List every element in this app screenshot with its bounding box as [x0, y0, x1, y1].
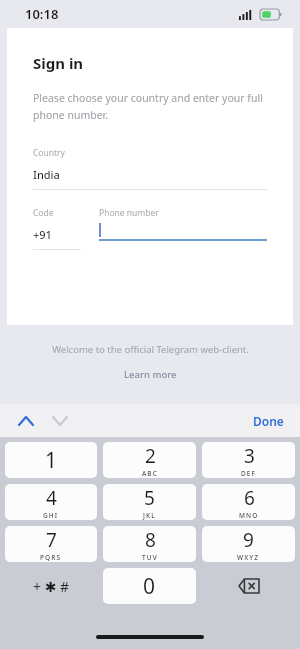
staticText: Country: [33, 147, 65, 159]
button[interactable]: 3: [202, 442, 295, 478]
button[interactable]: Previous field: [12, 407, 40, 435]
staticText: TUV: [142, 553, 158, 562]
staticText: Please choose your country and enter you…: [33, 91, 267, 122]
staticText: India: [33, 167, 60, 182]
button[interactable]: Done: [237, 407, 300, 435]
button[interactable]: 8: [103, 526, 196, 562]
staticText: 6: [244, 485, 255, 511]
staticText: ABC: [142, 469, 158, 478]
staticText: Done: [253, 413, 284, 429]
button[interactable]: 4: [5, 484, 97, 520]
staticText: 3: [244, 443, 255, 469]
staticText: 10:18: [25, 5, 59, 23]
staticText: MNO: [239, 511, 259, 520]
button[interactable]: [99, 223, 267, 238]
staticText: 1: [45, 446, 58, 475]
button[interactable]: 9: [202, 526, 295, 562]
button[interactable]: 2: [103, 442, 196, 478]
staticText: 9: [243, 527, 254, 553]
staticText: Code: [33, 207, 54, 219]
button[interactable]: +91: [33, 227, 81, 242]
staticText: 8: [145, 527, 156, 553]
staticText: 7: [46, 527, 57, 553]
staticText: PQRS: [40, 553, 62, 562]
button[interactable]: 1: [5, 442, 97, 478]
staticText: DEF: [241, 469, 257, 478]
staticText: JKL: [143, 511, 156, 520]
button[interactable]: Learn more: [118, 366, 183, 383]
staticText: Learn more: [124, 368, 177, 381]
staticText: + ✱ #: [33, 577, 70, 596]
button[interactable]: Backspace: [202, 568, 295, 604]
staticText: Welcome to the official Telegram web-cli…: [52, 343, 249, 356]
button[interactable]: India: [33, 167, 267, 182]
staticText: 5: [144, 485, 155, 511]
button[interactable]: 0: [103, 568, 196, 604]
button[interactable]: 5: [103, 484, 196, 520]
staticText: 0: [143, 572, 156, 601]
staticText: GHI: [43, 511, 59, 520]
button[interactable]: 7: [5, 526, 97, 562]
staticText: WXYZ: [237, 553, 260, 562]
staticText: Phone number: [99, 207, 159, 219]
button[interactable]: 6: [202, 484, 295, 520]
staticText: +91: [33, 227, 52, 242]
staticText: 4: [46, 485, 57, 511]
button[interactable]: Next field: [46, 407, 74, 435]
staticText: Sign in: [33, 53, 84, 73]
button[interactable]: + ✱ #: [5, 568, 97, 604]
staticText: 2: [145, 443, 156, 469]
